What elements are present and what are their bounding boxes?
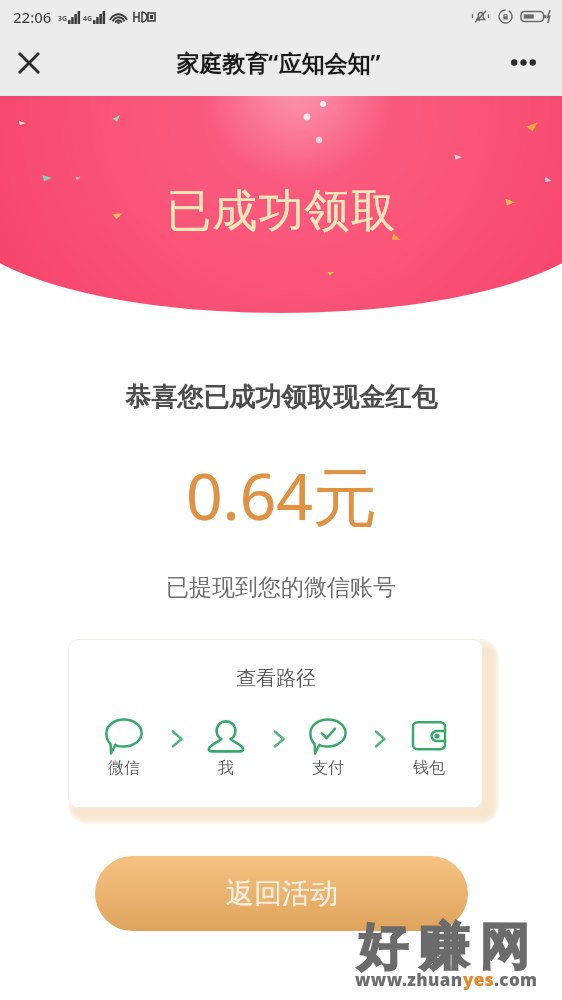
staticText: 22:06 [13,7,52,27]
button[interactable]: Close [7,41,50,84]
staticText: 返回活动 [226,876,338,911]
staticText: 已提现到您的微信账号 [166,573,396,602]
staticText: 0.64元 [186,452,377,539]
staticText: 恭喜您已成功领取现金红包 [125,381,437,414]
staticText: 我 [218,758,234,778]
staticText: 3G [58,14,68,24]
staticText: 好赚网 [352,916,535,979]
staticText: 支付 [312,758,344,778]
staticText: www.zhuan [355,968,463,991]
button[interactable]: 查看路径 [68,639,483,808]
staticText: 查看路径 [236,666,316,691]
button[interactable]: 返回活动 [95,856,468,931]
button[interactable]: More options [502,41,545,84]
staticText: .com [494,968,538,991]
staticText: 家庭教育“应知会知” [176,47,381,78]
staticText: 4G [83,14,93,24]
staticText: yes [463,968,494,991]
staticText: 已成功领取 [166,183,396,240]
staticText: 微信 [108,758,140,778]
staticText: 钱包 [413,758,445,778]
